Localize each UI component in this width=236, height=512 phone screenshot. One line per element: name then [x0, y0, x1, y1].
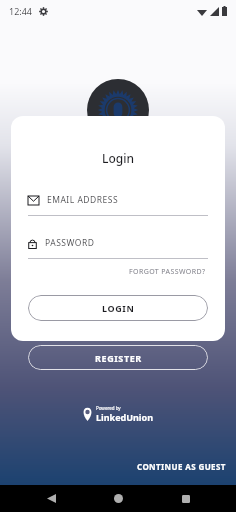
button[interactable]: FORGOT PASSWORD? [127, 265, 208, 279]
button[interactable]: EMAIL ADDRESS [28, 192, 208, 208]
staticText: REGISTER [95, 352, 142, 364]
button[interactable]: Recent apps [169, 485, 203, 512]
staticText: LOGIN [102, 302, 135, 314]
staticText: PASSWORD [45, 237, 95, 249]
staticText: LinkedUnion [96, 411, 154, 423]
button[interactable]: LOGIN [28, 295, 208, 321]
staticText: EMAIL ADDRESS [47, 194, 119, 206]
staticText: 12:44 [9, 5, 33, 17]
staticText: Powered by [96, 405, 121, 411]
button[interactable]: Back [34, 485, 68, 512]
button[interactable]: PASSWORD [28, 235, 208, 251]
button[interactable]: REGISTER [28, 345, 208, 370]
button[interactable]: Home [101, 485, 135, 512]
button[interactable]: CONTINUE AS GUEST [133, 458, 230, 475]
staticText: Login [28, 150, 208, 166]
